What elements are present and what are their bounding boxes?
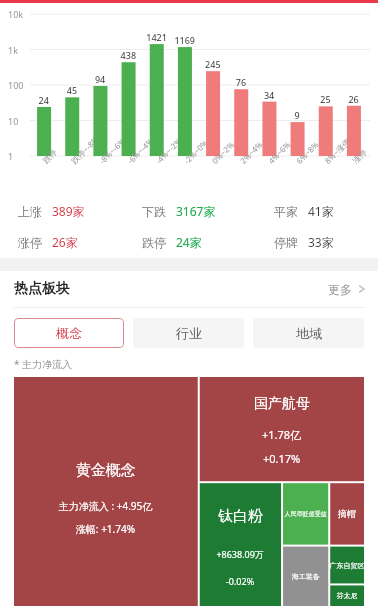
staticText: * 主力净流入 — [14, 357, 73, 371]
button[interactable]: 地域 — [253, 318, 364, 348]
staticText: 停牌 — [274, 235, 298, 250]
staticText: 26家 — [52, 234, 78, 250]
staticText: 更多 — [328, 282, 352, 297]
staticText: 地域 — [296, 325, 322, 341]
button[interactable]: 热点板块 — [0, 271, 378, 307]
staticText: 平家 — [274, 204, 298, 219]
staticText: 行业 — [176, 325, 202, 341]
staticText: 41家 — [308, 203, 334, 219]
button[interactable]: Sector treemap — [14, 377, 364, 606]
staticText: 下跌 — [142, 204, 166, 219]
staticText: 3167家 — [176, 203, 216, 219]
staticText: 24家 — [176, 234, 202, 250]
button[interactable]: 概念 — [14, 318, 124, 348]
other: More — [358, 283, 366, 295]
staticText: 389家 — [52, 203, 85, 219]
staticText: 跌停 — [142, 235, 166, 250]
staticText: 概念 — [56, 325, 82, 341]
button[interactable]: 行业 — [133, 318, 244, 348]
staticText: 涨停 — [18, 235, 42, 250]
staticText: 上涨 — [18, 204, 42, 219]
staticText: 33家 — [308, 234, 334, 250]
staticText: 热点板块 — [14, 280, 70, 298]
